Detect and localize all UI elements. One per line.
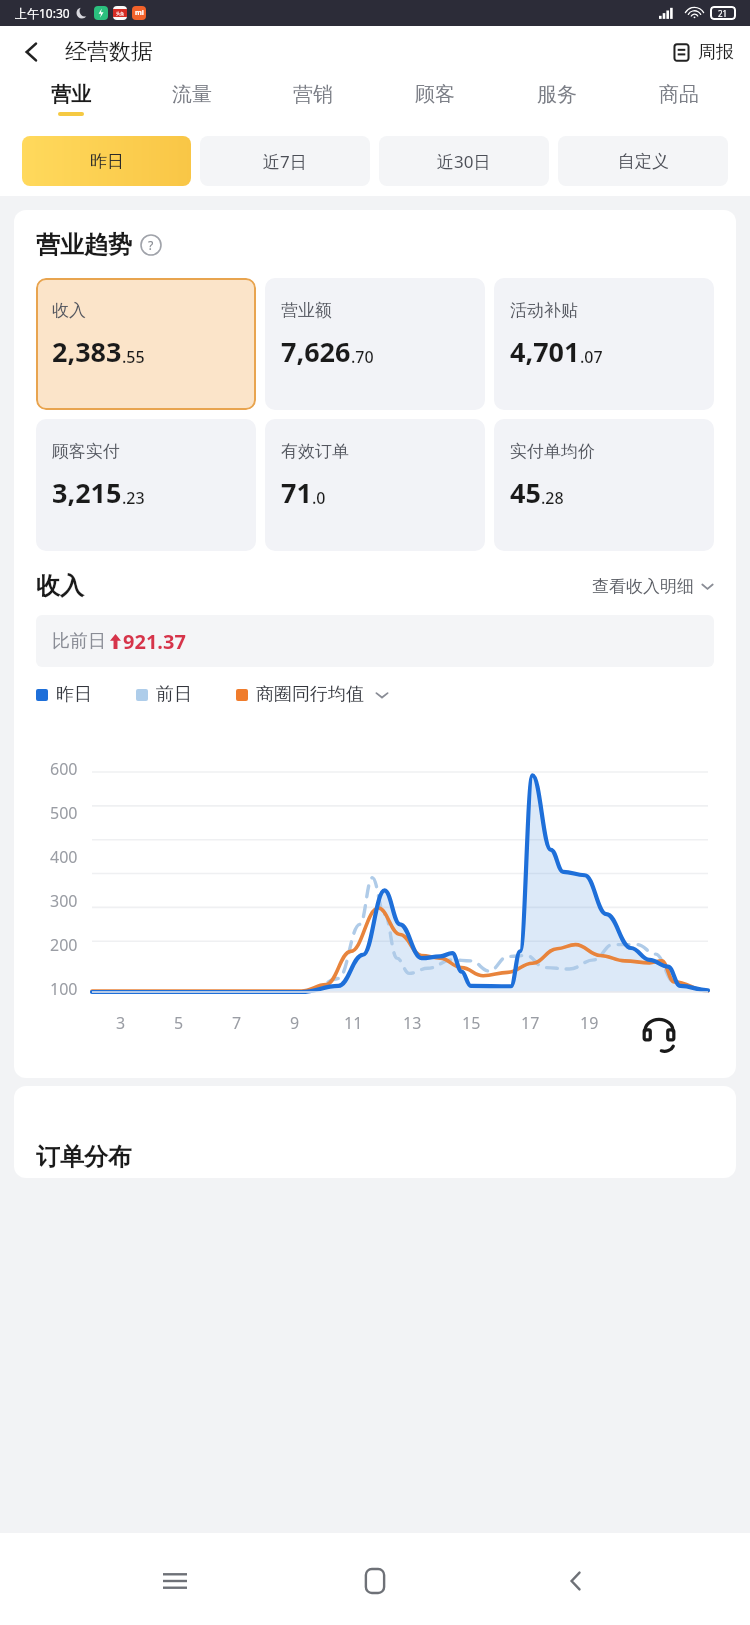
staticText: .55 [122,346,145,368]
staticText: mi [135,8,144,18]
staticText: 近30日 [437,150,491,173]
staticText: 自定义 [618,151,669,172]
staticText: 4,701 [510,333,580,370]
staticText: .07 [580,346,603,368]
staticText: 2,383 [52,333,122,370]
staticText: 7 [232,1012,242,1034]
button[interactable]: 实付单均价 [494,419,714,551]
staticText: 昨日 [56,683,92,706]
staticText: 营销 [293,82,333,107]
button[interactable]: 返回 [8,28,56,76]
staticText: 顾客 [415,82,455,107]
button[interactable]: 最近任务 [149,1555,201,1607]
button[interactable]: 收入 [36,278,256,410]
staticText: 实付单均价 [510,441,595,462]
button[interactable]: 周报 [672,41,734,64]
button[interactable]: 有效订单 [265,419,485,551]
staticText: 45 [510,474,541,511]
staticText: 9 [290,1012,300,1034]
staticText: 15 [462,1012,481,1034]
staticText: 71 [281,474,312,511]
staticText: 100 [50,978,78,1000]
staticText: 营业 [51,82,91,107]
staticText: 查看收入明细 [592,576,694,597]
button[interactable]: 近7日 [200,136,370,186]
button[interactable]: 活动补贴 [494,278,714,410]
staticText: 400 [50,846,78,868]
staticText: 经营数据 [65,38,153,66]
staticText: 服务 [537,82,577,107]
staticText: 17 [521,1012,540,1034]
staticText: 流量 [172,82,212,107]
staticText: 500 [50,802,78,824]
staticText: 头条 [116,11,124,16]
staticText: 上午10:30 [15,5,70,21]
staticText: 3 [116,1012,126,1034]
button[interactable]: 营业额 [265,278,485,410]
button[interactable]: 流量 [131,78,252,126]
staticText: 营业趋势 [36,230,132,260]
staticText: 订单分布 [36,1142,132,1172]
staticText: 营业额 [281,300,332,321]
button[interactable]: 自定义 [558,136,728,186]
staticText: 5 [174,1012,184,1034]
staticText: 3,215 [52,474,122,511]
staticText: 21 [718,8,728,19]
button[interactable]: 营销 [252,78,374,126]
staticText: 11 [344,1012,363,1034]
button[interactable]: 商品 [618,78,740,126]
button[interactable]: 返回 [550,1555,602,1607]
staticText: 昨日 [90,151,124,172]
button[interactable]: 切换对比 [374,687,390,703]
staticText: .28 [541,487,564,509]
staticText: 近7日 [263,150,307,173]
button[interactable]: 营业 [10,78,131,126]
staticText: .0 [312,487,326,509]
button[interactable]: 顾客 [374,78,496,126]
staticText: 收入 [52,300,86,321]
staticText: 比前日 [52,630,106,653]
button[interactable]: 客服 [622,996,696,1070]
button[interactable]: 服务 [496,78,618,126]
button[interactable]: 查看收入明细 [592,576,714,597]
staticText: 活动补贴 [510,300,578,321]
staticText: 有效订单 [281,441,349,462]
staticText: .70 [351,346,374,368]
staticText: 200 [50,934,78,956]
staticText: 921.37 [123,628,186,655]
staticText: 21 [639,1012,658,1034]
staticText: 19 [580,1012,599,1034]
button[interactable]: 主页 [349,1555,401,1607]
button[interactable]: 说明 [140,234,162,256]
button[interactable]: 顾客实付 [36,419,256,551]
staticText: 顾客实付 [52,441,120,462]
staticText: 600 [50,758,78,780]
staticText: 周报 [698,41,734,64]
staticText: 商品 [659,82,699,107]
staticText: .23 [122,487,145,509]
staticText: 收入 [36,571,84,601]
button[interactable]: 昨日 [22,136,191,186]
staticText: 7,626 [281,333,351,370]
staticText: ? [148,237,154,253]
staticText: 前日 [156,683,192,706]
staticText: 13 [403,1012,422,1034]
button[interactable]: 近30日 [379,136,549,186]
staticText: 300 [50,890,78,912]
staticText: 商圈同行均值 [256,683,364,706]
